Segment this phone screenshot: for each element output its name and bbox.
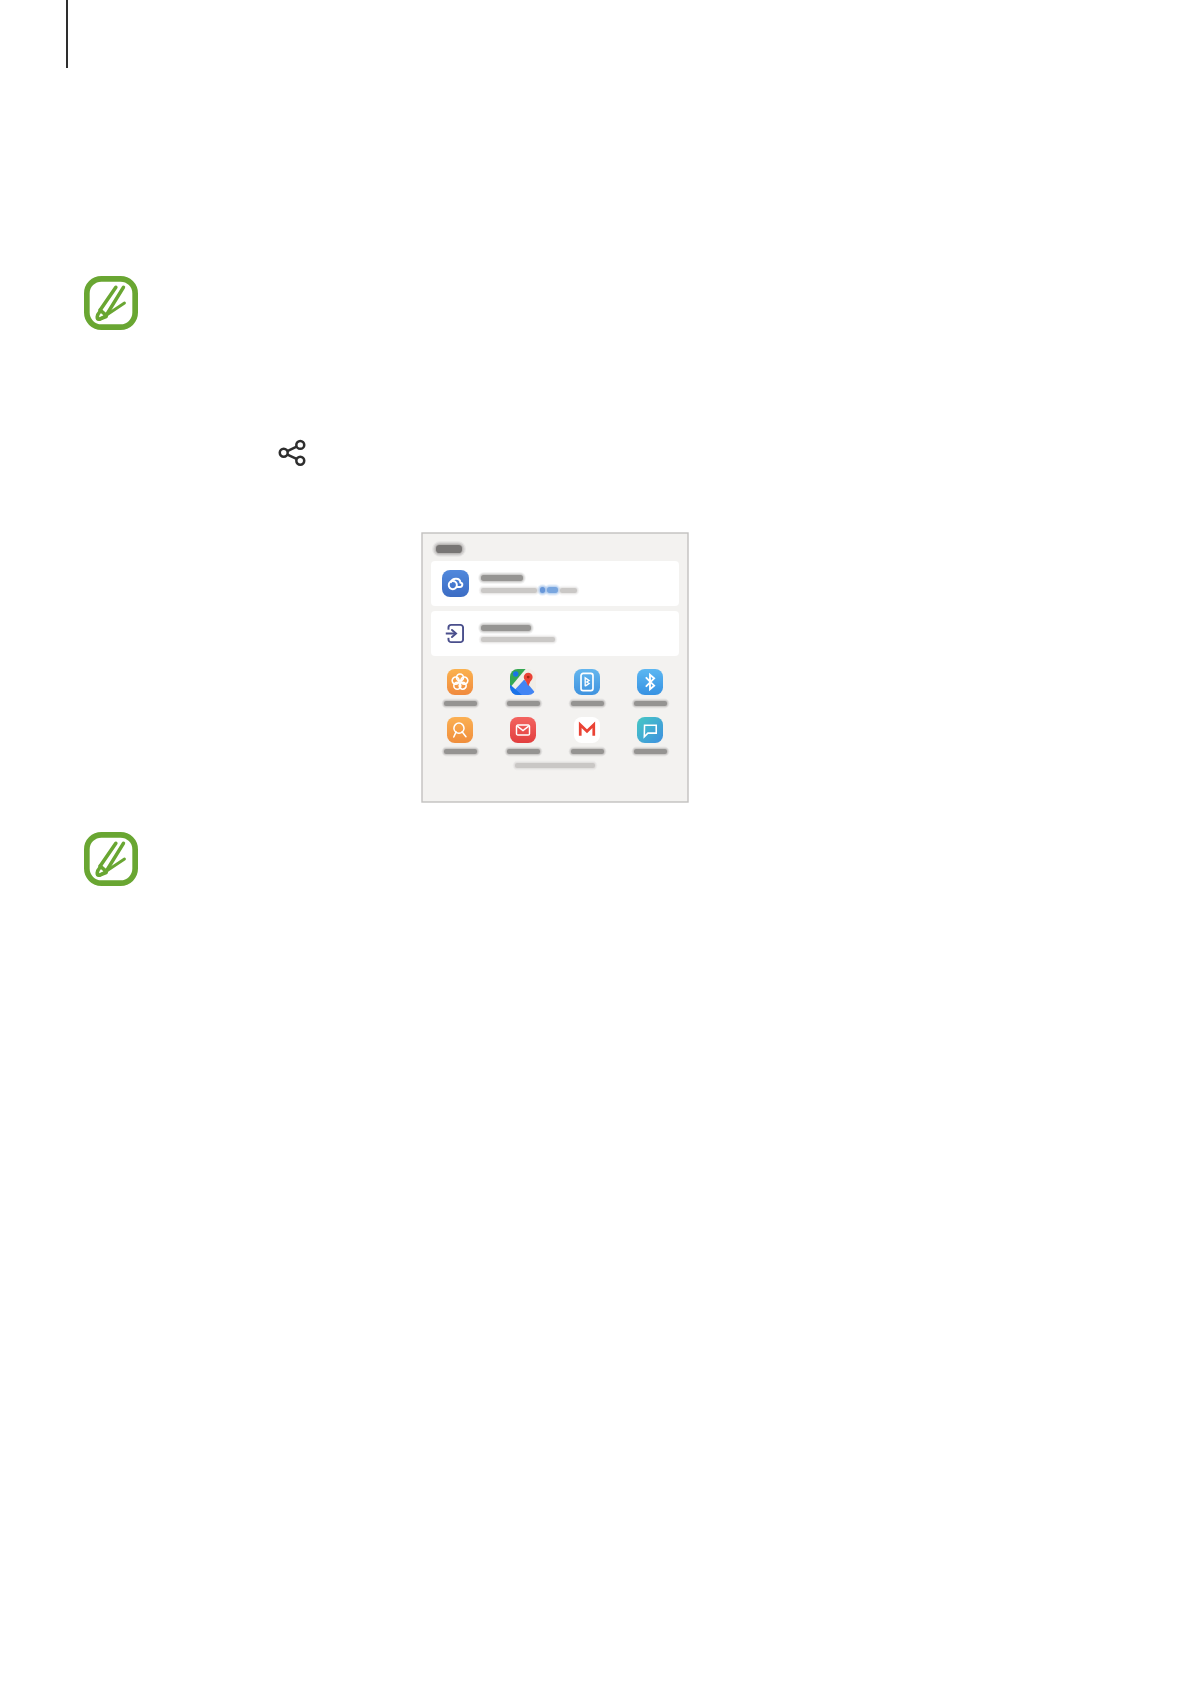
button[interactable]: Shared album xyxy=(439,669,481,706)
button[interactable] xyxy=(431,611,679,656)
button[interactable]: Add to Maps xyxy=(502,669,544,706)
button[interactable]: Share xyxy=(274,433,310,469)
button[interactable]: Messages xyxy=(629,717,671,754)
button[interactable]: Contacts xyxy=(439,717,481,754)
button[interactable]: Bluetooth xyxy=(629,669,671,706)
button[interactable]: Email xyxy=(502,717,544,754)
button[interactable]: Android Beam xyxy=(566,669,608,706)
button[interactable]: Gmail xyxy=(566,717,608,754)
button[interactable] xyxy=(431,561,679,606)
